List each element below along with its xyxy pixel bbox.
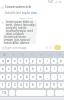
staticText: e — [14, 59, 16, 63]
staticText: k — [46, 67, 48, 71]
button[interactable]: 5 — [24, 82, 29, 88]
staticText: o — [53, 59, 55, 63]
staticText: h — [32, 67, 34, 71]
button[interactable]: ?12 — [0, 90, 8, 96]
button[interactable]: v — [18, 74, 23, 80]
staticText: . — [54, 75, 55, 79]
button[interactable]: Ut enim ad minim veniam, quis nostrud ex… — [4, 35, 35, 44]
staticText: 0 — [60, 83, 62, 87]
button[interactable]: m — [37, 74, 43, 80]
button[interactable]: Send — [54, 45, 61, 50]
button[interactable]: b — [24, 74, 29, 80]
button[interactable]: y — [30, 58, 36, 64]
staticText: u — [39, 59, 41, 63]
button[interactable]: l — [51, 66, 57, 72]
staticText: j — [40, 67, 41, 71]
staticText: Ut enim ad minim veniam, quis nostrud ex… — [4, 35, 35, 44]
button[interactable]: 9 — [51, 82, 57, 88]
staticText: b — [26, 75, 28, 79]
button[interactable]: 7 — [37, 82, 43, 88]
staticText: Type a message — [5, 46, 27, 50]
staticText: a — [2, 67, 4, 71]
staticText: v — [20, 75, 22, 79]
staticText: q — [2, 59, 4, 63]
staticText: g — [26, 67, 28, 71]
button[interactable]: x — [6, 74, 11, 80]
staticText: 1 — [2, 83, 4, 87]
staticText: m — [39, 75, 42, 79]
button[interactable]: 0 — [58, 82, 64, 88]
staticText: n — [32, 75, 34, 79]
button[interactable]: w — [6, 58, 11, 64]
staticText: ; — [61, 67, 62, 71]
staticText: y — [32, 59, 34, 63]
button[interactable]: Back — [1, 6, 4, 9]
button[interactable]: Enter — [55, 90, 64, 96]
staticText: z — [2, 75, 4, 79]
staticText: , — [47, 75, 48, 79]
staticText: 3 — [14, 83, 16, 87]
button[interactable]: i — [44, 58, 50, 64]
button[interactable]: 2 — [6, 82, 11, 88]
button[interactable]: d — [12, 66, 17, 72]
staticText: c — [14, 75, 16, 79]
button[interactable]: / — [58, 74, 64, 80]
staticText: / — [60, 75, 62, 79]
button[interactable]: Camera — [45, 46, 48, 49]
button[interactable]: 8 — [44, 82, 50, 88]
staticText: 9:41 — [48, 0, 54, 4]
button[interactable]: . — [51, 74, 57, 80]
button[interactable]: a — [0, 66, 5, 72]
button[interactable]: h — [30, 66, 36, 72]
button[interactable]: , — [44, 74, 50, 80]
button[interactable]: 4 — [18, 82, 23, 88]
staticText: d — [14, 67, 16, 71]
staticText: 7 — [39, 83, 41, 87]
button[interactable]: Keyboard tool — [3, 53, 6, 56]
button[interactable]: Lorem ipsum dolor sit amet, consec tetur… — [6, 20, 36, 35]
button[interactable]: k — [44, 66, 50, 72]
button[interactable]: j — [37, 66, 43, 72]
button[interactable]: o — [51, 58, 57, 64]
button[interactable]: t — [24, 58, 29, 64]
button[interactable]: c — [12, 74, 17, 80]
button[interactable]: r — [18, 58, 23, 64]
button[interactable]: s — [6, 66, 11, 72]
button[interactable]: f — [18, 66, 23, 72]
button[interactable]: Space — [16, 90, 46, 96]
button[interactable]: u — [37, 58, 43, 64]
button[interactable]: ; — [58, 66, 64, 72]
button[interactable]: n — [30, 74, 36, 80]
button[interactable]: p — [58, 58, 64, 64]
button[interactable]: Emoji — [9, 90, 15, 96]
staticText: Conversation title — [5, 5, 32, 9]
staticText: 4 — [20, 83, 22, 87]
button[interactable]: g — [24, 66, 29, 72]
button[interactable]: Gallery — [49, 46, 52, 49]
staticText: i — [47, 59, 48, 63]
button[interactable]: e — [12, 58, 17, 64]
button[interactable]: Attach — [1, 46, 5, 50]
staticText: 2 — [8, 83, 10, 87]
staticText: 9 — [53, 83, 55, 87]
staticText: Subtitle line — [5, 11, 22, 15]
staticText: tap to view — [22, 11, 37, 15]
button[interactable]: q — [0, 58, 5, 64]
button[interactable]: 3 — [12, 82, 17, 88]
staticText: 6 — [32, 83, 34, 87]
staticText: Today 12:30 — [19, 16, 33, 19]
staticText: t — [26, 59, 28, 63]
button[interactable]: z — [0, 74, 5, 80]
staticText: r — [20, 59, 22, 63]
button[interactable]: Period — [47, 90, 54, 96]
button[interactable]: 1 — [0, 82, 5, 88]
staticText: Lorem ipsum dolor sit amet, consec tetur… — [6, 20, 36, 35]
button[interactable]: 6 — [30, 82, 36, 88]
staticText: w — [7, 59, 10, 63]
